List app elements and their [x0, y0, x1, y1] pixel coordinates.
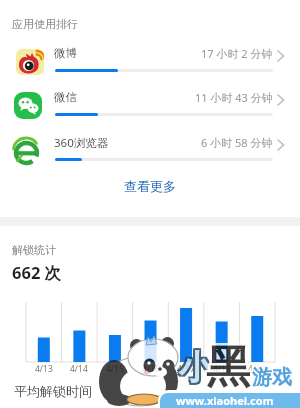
staticText: 小: [179, 349, 212, 391]
staticText: 黑: [208, 342, 252, 397]
staticText: 小: [181, 345, 214, 387]
staticText: 游戏: [254, 367, 294, 392]
staticText: 解锁统计: [12, 243, 56, 257]
staticText: 4/15: [106, 363, 124, 375]
staticText: 黑: [206, 340, 250, 395]
staticText: 4/16: [142, 363, 160, 375]
staticText: 黑: [204, 342, 248, 397]
staticText: 黑: [206, 342, 250, 397]
staticText: 黑: [204, 338, 248, 393]
staticText: 小: [179, 347, 212, 389]
staticText: 4/14: [70, 363, 88, 375]
staticText: 游戏: [252, 365, 292, 390]
staticText: 小: [181, 349, 214, 391]
staticText: www.xiaohei.com: [176, 393, 274, 408]
button[interactable]: 微信: [0, 87, 300, 131]
staticText: 小: [177, 347, 210, 389]
staticText: 黑: [204, 340, 248, 395]
button[interactable]: 查看更多: [0, 176, 300, 196]
staticText: 4/17: [177, 363, 195, 375]
staticText: 小: [177, 349, 210, 391]
staticText: 微信: [54, 90, 77, 104]
staticText: 4/19: [248, 363, 266, 375]
staticText: 黑: [206, 338, 250, 393]
staticText: 小: [181, 347, 214, 389]
staticText: 游戏: [252, 367, 292, 392]
staticText: 11 小时 43 分钟: [195, 90, 273, 105]
staticText: 6 小时 58 分钟: [201, 135, 273, 150]
staticText: 4/13: [35, 363, 53, 375]
staticText: 游戏: [254, 363, 294, 388]
staticText: 游戏: [254, 365, 294, 390]
staticText: 小: [177, 345, 210, 387]
button[interactable]: 微博: [0, 43, 300, 87]
staticText: 查看更多: [124, 178, 176, 194]
staticText: 小: [179, 345, 212, 387]
staticText: 游戏: [250, 367, 290, 392]
staticText: 游戏: [250, 365, 290, 390]
staticText: 4/18: [213, 363, 231, 375]
staticText: 应用使用排行: [12, 17, 78, 31]
button[interactable]: 360浏览器: [0, 132, 300, 176]
staticText: 游戏: [250, 363, 290, 388]
staticText: 微博: [54, 46, 77, 60]
staticText: 662 次: [12, 261, 62, 284]
staticText: 黑: [208, 338, 252, 393]
staticText: 黑: [208, 340, 252, 395]
staticText: 360浏览器: [54, 135, 109, 151]
staticText: 平均解锁时间: [14, 383, 92, 399]
staticText: 游戏: [252, 363, 292, 388]
staticText: 17 小时 2 分钟: [201, 46, 273, 61]
